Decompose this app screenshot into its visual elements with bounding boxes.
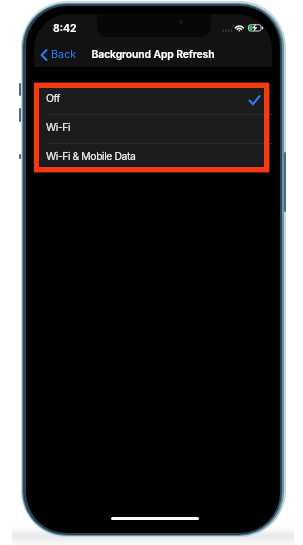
staticText: Off	[46, 92, 60, 105]
staticText: 8:42	[53, 22, 77, 35]
button[interactable]: Wi-Fi & Mobile Data	[40, 144, 265, 172]
staticText: Wi-Fi & Mobile Data	[46, 150, 136, 163]
staticText: Back	[51, 48, 77, 61]
button[interactable]: Back	[34, 43, 87, 66]
button[interactable]: Off	[40, 86, 265, 114]
staticText: Background App Refresh	[34, 48, 272, 61]
button[interactable]: Wi-Fi	[40, 115, 265, 143]
other: Back	[41, 50, 47, 60]
staticText: Wi-Fi	[46, 121, 71, 134]
